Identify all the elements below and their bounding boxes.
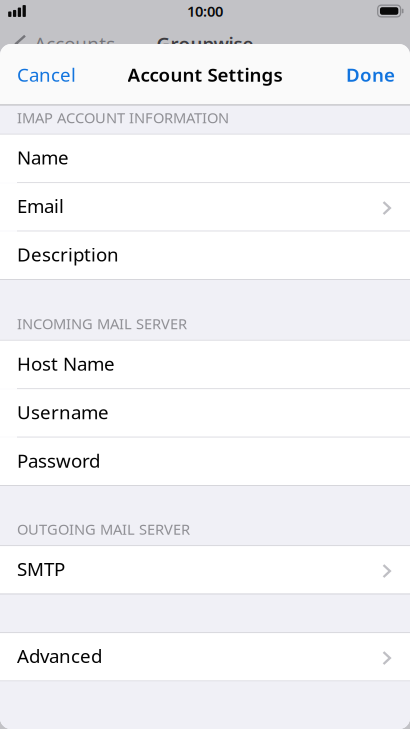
staticText: IMAP ACCOUNT INFORMATION (17, 108, 229, 127)
button[interactable]: SMTP (0, 546, 410, 594)
staticText: Accounts (34, 31, 115, 56)
staticText: Description (17, 242, 119, 267)
staticText: Password (17, 448, 100, 473)
button[interactable]: Name (0, 135, 410, 182)
button[interactable]: Done (336, 50, 410, 99)
staticText: Name (17, 145, 69, 170)
button[interactable]: Email (0, 183, 410, 231)
button[interactable]: Cancel (0, 50, 86, 99)
button[interactable]: Password (0, 438, 410, 485)
staticText: INCOMING MAIL SERVER (17, 314, 187, 333)
staticText: Groupwise (156, 31, 253, 56)
staticText: Username (17, 400, 109, 424)
staticText: Host Name (17, 351, 115, 376)
button[interactable]: Username (0, 389, 410, 437)
button[interactable]: Accounts (15, 31, 115, 56)
button[interactable]: Advanced (0, 633, 410, 681)
button[interactable]: Host Name (0, 341, 410, 388)
staticText: SMTP (17, 556, 65, 581)
staticText: Email (17, 193, 64, 218)
button[interactable]: Description (0, 232, 410, 279)
staticText: Advanced (17, 643, 102, 668)
staticText: 10:00 (187, 1, 223, 21)
staticText: Account Settings (127, 62, 282, 87)
staticText: Cancel (17, 62, 76, 87)
staticText: OUTGOING MAIL SERVER (17, 519, 190, 539)
staticText: Done (346, 62, 395, 87)
